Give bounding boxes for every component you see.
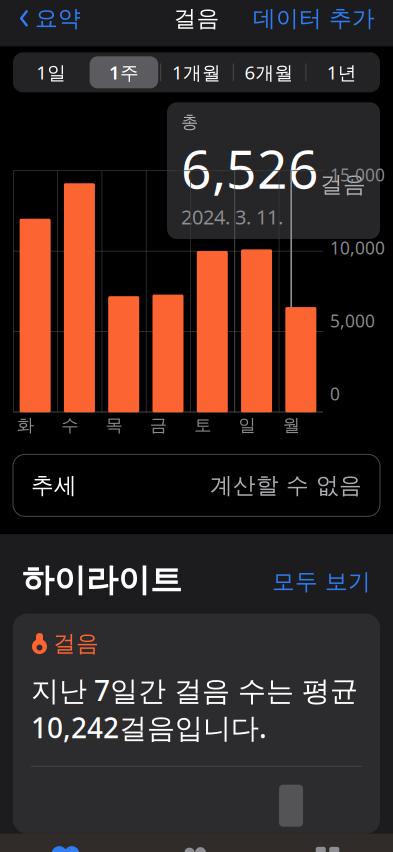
staticText: 총: [181, 111, 198, 133]
staticText: 0: [330, 382, 340, 405]
staticText: 2024. 3. 11.: [181, 203, 283, 230]
staticText: 하이라이트: [22, 560, 182, 600]
staticText: 10,000: [330, 236, 385, 259]
staticText: 지난 7일간 걸음 수는 평균 10,242걸음입니다.: [31, 671, 358, 746]
staticText: 모두 보기: [272, 568, 371, 596]
staticText: 6개월: [245, 60, 294, 85]
button[interactable]: 1개월: [160, 54, 233, 90]
staticText: 추세: [31, 471, 77, 499]
staticText: 1년: [327, 60, 357, 85]
button[interactable]: 공유: [131, 844, 262, 852]
staticText: 6,526: [181, 133, 319, 203]
staticText: 요약: [35, 4, 81, 32]
button[interactable]: 1주: [88, 54, 160, 90]
staticText: 걸음: [320, 171, 366, 198]
staticText: 금: [150, 415, 167, 436]
staticText: 월: [283, 415, 300, 436]
staticText: 걸음: [173, 4, 219, 32]
button[interactable]: 데이터 추가: [241, 0, 387, 40]
button[interactable]: 걸음: [13, 614, 380, 834]
staticText: 데이터 추가: [253, 4, 375, 32]
button[interactable]: 검색: [262, 844, 393, 852]
staticText: 토: [194, 415, 211, 436]
staticText: 목: [106, 415, 123, 436]
staticText: 수: [61, 415, 78, 436]
staticText: 1개월: [172, 60, 221, 85]
staticText: 15,000: [330, 163, 385, 186]
button[interactable]: 6개월: [233, 54, 305, 90]
button[interactable]: 1년: [305, 54, 378, 90]
button[interactable]: 1일: [15, 54, 88, 90]
staticText: 5,000: [330, 309, 375, 332]
button[interactable]: 추세: [13, 454, 380, 516]
button[interactable]: 요약: [6, 0, 93, 40]
staticText: 1주: [109, 60, 139, 85]
button[interactable]: 모두 보기: [272, 564, 371, 600]
staticText: 계산할 수 없음: [210, 471, 362, 499]
staticText: 일: [238, 415, 255, 436]
staticText: 걸음: [53, 630, 99, 657]
staticText: 1일: [36, 60, 66, 85]
button[interactable]: 요약: [0, 844, 131, 852]
staticText: 화: [17, 415, 34, 436]
